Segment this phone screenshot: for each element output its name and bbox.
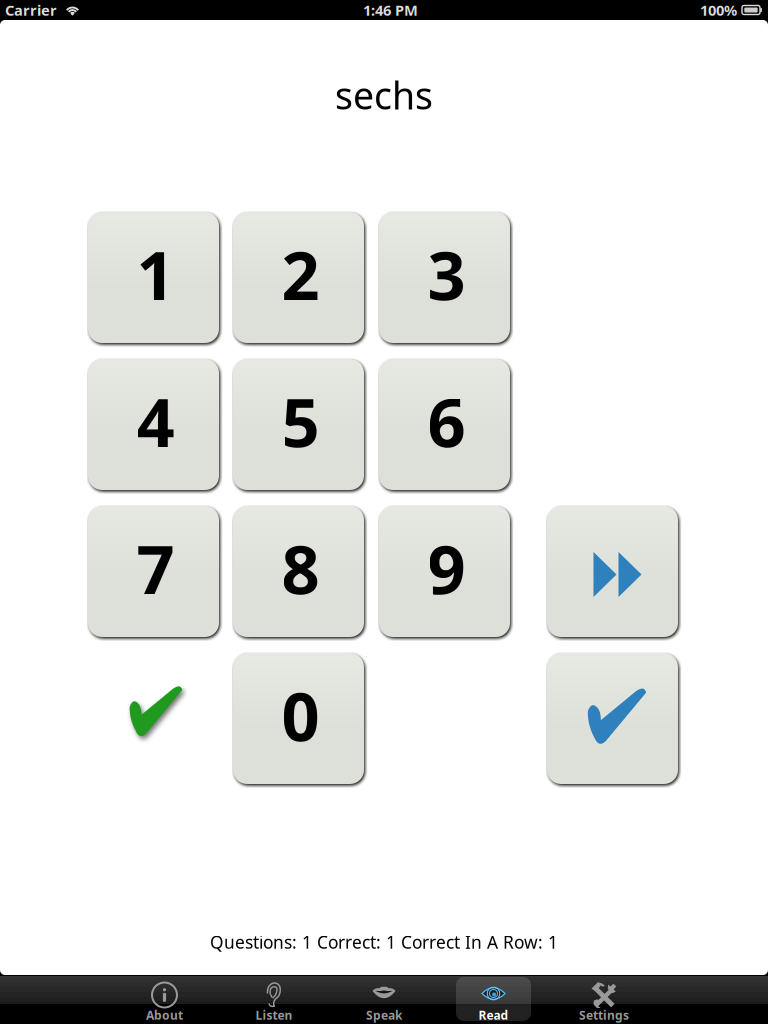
staticText: 8 (281, 524, 319, 613)
staticText: 7 (136, 524, 174, 613)
staticText: sechs (335, 70, 433, 120)
button[interactable]: 0 (233, 653, 364, 784)
button[interactable]: 4 (88, 359, 219, 490)
button[interactable]: Answer correct (88, 653, 219, 784)
button[interactable]: Submit answer (547, 653, 678, 784)
button[interactable]: Read (449, 977, 537, 1021)
button[interactable]: 8 (233, 506, 364, 637)
staticText: 9 (427, 524, 465, 613)
staticText: 1:46 PM (363, 0, 418, 20)
button[interactable]: Settings (560, 977, 648, 1021)
staticText: 3 (427, 230, 465, 319)
button[interactable]: Listen (230, 977, 318, 1021)
staticText: Settings (579, 1007, 629, 1023)
staticText: 5 (281, 377, 319, 466)
button[interactable]: 1 (88, 212, 219, 343)
staticText: About (146, 1007, 183, 1023)
staticText: 2 (281, 230, 319, 319)
button[interactable]: 6 (379, 359, 510, 490)
staticText: 0 (281, 671, 319, 760)
staticText: 4 (136, 377, 174, 466)
staticText: Questions: 1 Correct: 1 Correct In A Row… (210, 930, 558, 953)
button[interactable]: 9 (379, 506, 510, 637)
staticText: Read (478, 1007, 508, 1023)
button[interactable]: 5 (233, 359, 364, 490)
staticText: 6 (427, 377, 465, 466)
staticText: Listen (255, 1007, 292, 1023)
staticText: Carrier (5, 0, 57, 20)
button[interactable]: 3 (379, 212, 510, 343)
button[interactable]: About (120, 977, 208, 1021)
button[interactable]: 2 (233, 212, 364, 343)
button[interactable]: Speak (340, 977, 428, 1021)
button[interactable]: Next question (547, 506, 678, 637)
staticText: 1 (136, 230, 174, 319)
button[interactable]: 7 (88, 506, 219, 637)
staticText: 100% (700, 0, 737, 20)
staticText: Speak (366, 1007, 402, 1023)
